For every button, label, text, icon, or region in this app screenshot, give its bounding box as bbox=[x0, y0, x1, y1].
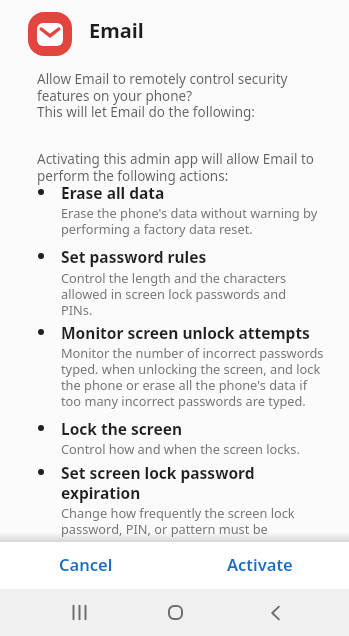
staticText: Erase the phone's data without warning b… bbox=[61, 204, 318, 237]
button[interactable]: Cancel bbox=[59, 542, 113, 589]
staticText: Activate bbox=[227, 553, 293, 575]
staticText: Control the length and the characters al… bbox=[61, 269, 287, 318]
staticText: Monitor the number of incorrect password… bbox=[61, 344, 324, 409]
staticText: Email bbox=[89, 17, 144, 44]
staticText: Set screen lock password expiration bbox=[61, 462, 255, 503]
staticText: Control how and when the screen locks. bbox=[61, 440, 300, 457]
staticText: Set password rules bbox=[61, 246, 207, 267]
staticText: Erase all data bbox=[61, 182, 165, 203]
staticText: Change how frequently the screen lock pa… bbox=[61, 504, 295, 537]
button[interactable] bbox=[55, 589, 103, 636]
staticText: Lock the screen bbox=[61, 418, 183, 439]
button[interactable] bbox=[251, 589, 299, 636]
button[interactable]: Activate bbox=[227, 542, 293, 589]
staticText: Activating this admin app will allow Ema… bbox=[37, 150, 314, 185]
staticText: Monitor screen unlock attempts bbox=[61, 322, 310, 343]
staticText: Cancel bbox=[59, 553, 113, 575]
staticText: Allow Email to remotely control security… bbox=[37, 70, 288, 121]
button[interactable] bbox=[151, 589, 199, 636]
